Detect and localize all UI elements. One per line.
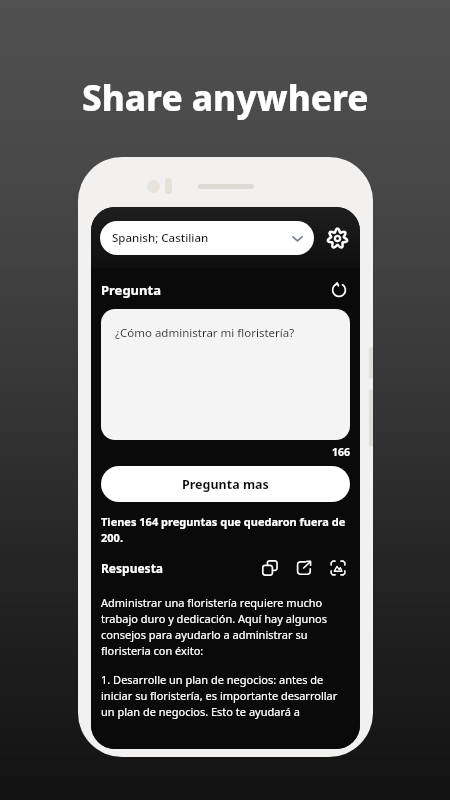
button[interactable]: Spanish; Castilian bbox=[100, 221, 314, 255]
button[interactable]: Refresh bbox=[328, 279, 350, 301]
staticText: ¿Cómo administrar mi floristería? bbox=[115, 325, 295, 341]
staticText: Respuesta bbox=[101, 560, 164, 576]
staticText: Pregunta mas bbox=[182, 476, 269, 493]
staticText: Tienes 164 preguntas que quedaron fuera … bbox=[101, 514, 350, 545]
button[interactable]: Pregunta mas bbox=[101, 466, 350, 502]
staticText: Administrar una floristería requiere muc… bbox=[101, 595, 350, 658]
button[interactable]: Settings bbox=[323, 224, 351, 252]
button[interactable]: Copy bbox=[258, 556, 282, 580]
staticText: Share anywhere bbox=[82, 74, 369, 122]
button[interactable]: ¿Cómo administrar mi floristería? bbox=[101, 309, 350, 440]
staticText: Pregunta bbox=[101, 281, 161, 299]
staticText: 166 bbox=[101, 445, 350, 459]
button[interactable]: Save image bbox=[326, 556, 350, 580]
button[interactable]: Share bbox=[292, 556, 316, 580]
staticText: 1. Desarrolle un plan de negocios: antes… bbox=[101, 672, 350, 719]
staticText: Spanish; Castilian bbox=[112, 230, 209, 246]
